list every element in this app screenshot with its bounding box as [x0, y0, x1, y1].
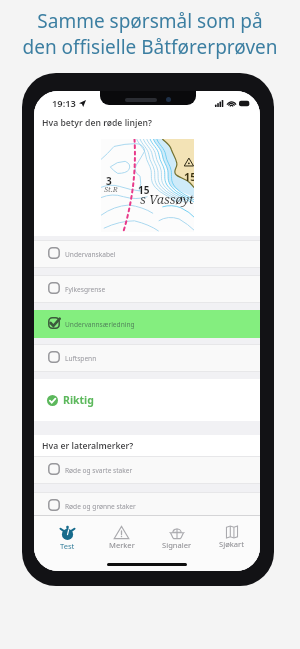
- staticText: Riktig: [63, 393, 94, 407]
- other: Sjøkart: [226, 526, 238, 538]
- staticText: 19:13: [52, 97, 76, 110]
- staticText: Test: [60, 541, 75, 551]
- button[interactable]: Luftspenn: [34, 344, 260, 372]
- staticText: Undervanskabel: [65, 250, 116, 259]
- staticText: Fylkesgrense: [65, 285, 106, 294]
- staticText: 15: [184, 169, 194, 184]
- staticText: Hva betyr den røde linjen?: [42, 117, 152, 129]
- staticText: Samme spørsmål som på: [37, 8, 263, 34]
- button[interactable]: Undervannsærledning: [34, 310, 260, 338]
- staticText: Sjøkart: [219, 539, 244, 549]
- other: Test: [60, 526, 75, 540]
- button[interactable]: Merker: [94, 516, 149, 552]
- other: Signaler: [170, 526, 184, 539]
- staticText: St.R: [104, 184, 118, 194]
- staticText: 15: [138, 183, 150, 197]
- staticText: Merker: [109, 540, 135, 550]
- staticText: Luftspenn: [65, 354, 97, 363]
- button[interactable]: Fylkesgrense: [34, 275, 260, 303]
- button[interactable]: Røde og svarte staker: [34, 456, 260, 484]
- staticText: Røde og svarte staker: [65, 466, 133, 475]
- staticText: Undervannsærledning: [65, 320, 135, 329]
- button[interactable]: Signaler: [149, 516, 204, 552]
- staticText: Hva er lateralmerker?: [42, 440, 134, 452]
- other: Merker: [114, 526, 129, 539]
- button[interactable]: Test: [40, 516, 94, 552]
- staticText: s Vassøytå: [140, 191, 194, 208]
- button[interactable]: Sjøkart: [204, 516, 259, 552]
- staticText: Signaler: [162, 540, 192, 550]
- button[interactable]: Røde og grønne staker: [34, 492, 260, 520]
- staticText: Røde og grønne staker: [65, 502, 136, 511]
- staticText: den offisielle Båtførerprøven: [22, 34, 278, 60]
- button[interactable]: Undervanskabel: [34, 240, 260, 268]
- staticText: 3: [106, 174, 112, 188]
